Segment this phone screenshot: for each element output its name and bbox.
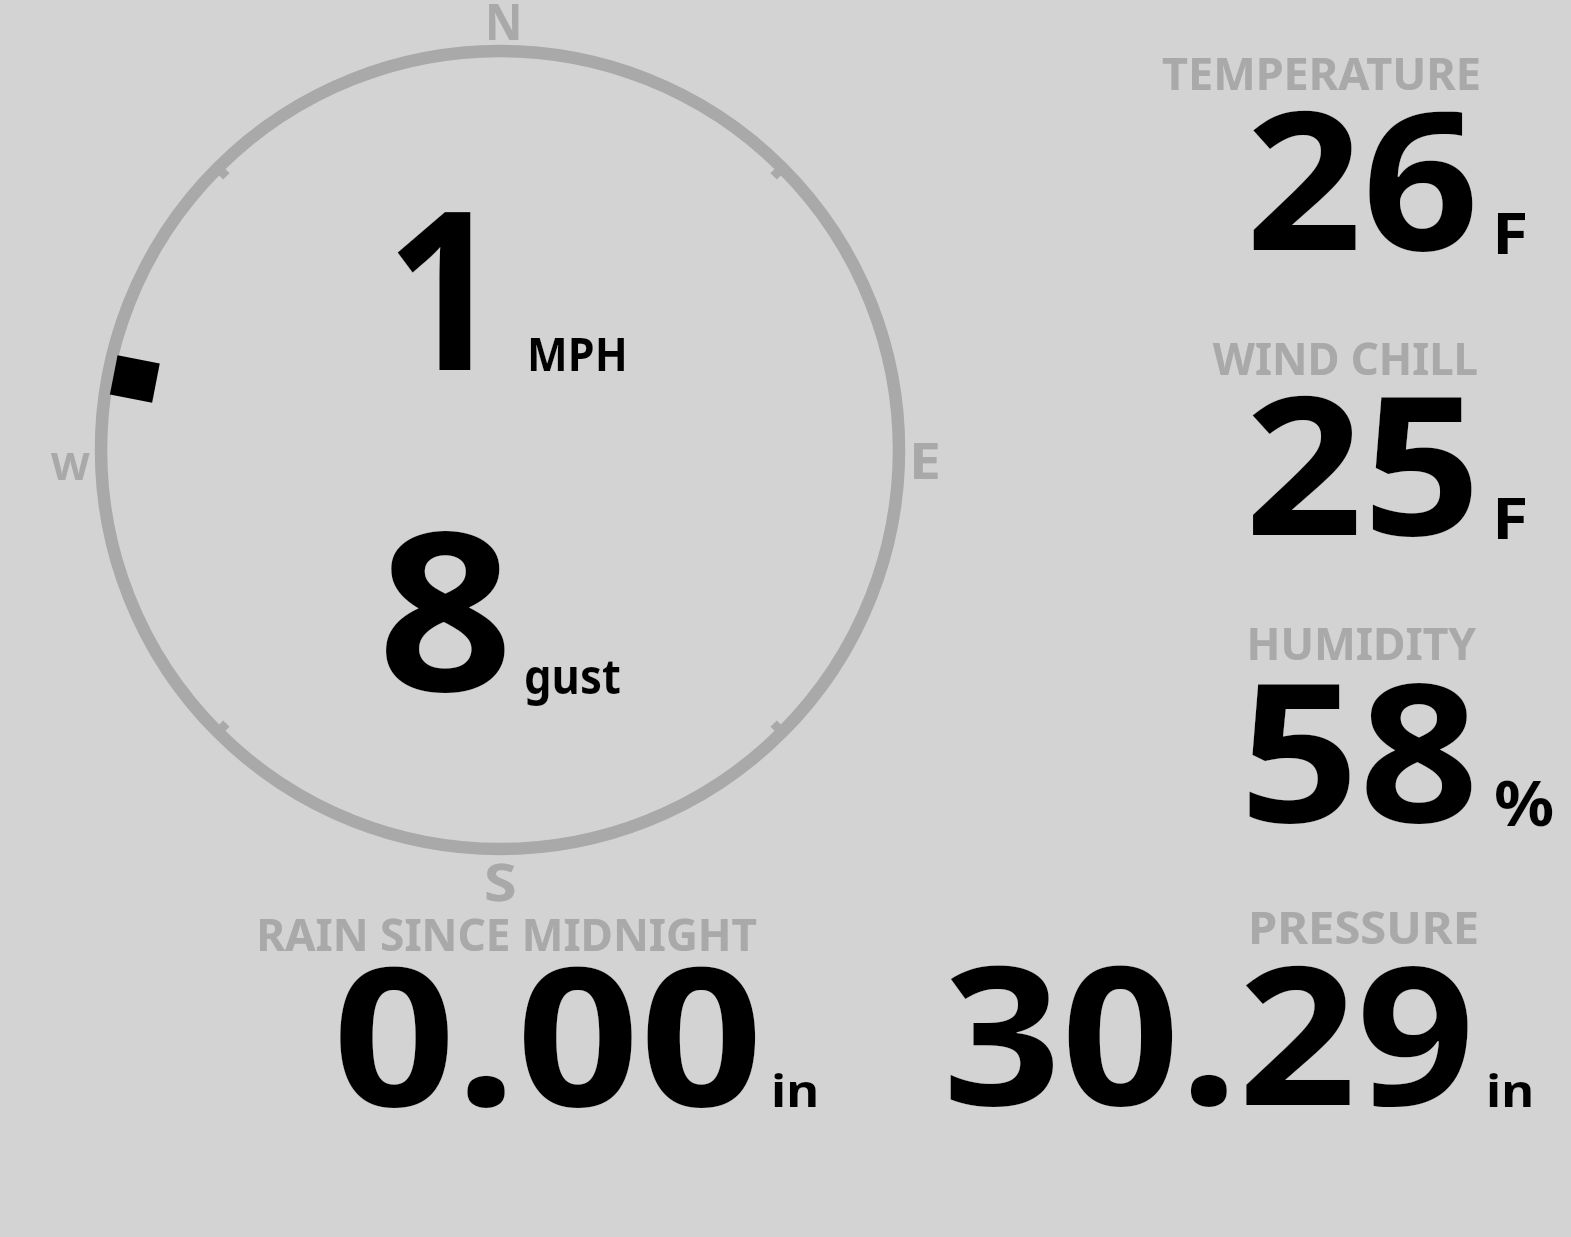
button[interactable]: TEMPERATURE xyxy=(1140,40,1571,270)
button[interactable]: 8 xyxy=(330,500,660,720)
staticText: MPH xyxy=(527,322,628,385)
staticText: S xyxy=(484,845,517,916)
staticText: 26 xyxy=(1245,45,1479,307)
staticText: 0.00 xyxy=(332,901,763,1163)
staticText: 8 xyxy=(377,455,513,756)
button[interactable]: 1 xyxy=(330,170,660,400)
staticText: 58 xyxy=(1239,617,1479,879)
button[interactable]: RAIN SINCE MIDNIGHT xyxy=(240,895,840,1130)
staticText: E xyxy=(909,426,941,494)
staticText: in xyxy=(771,1059,820,1120)
staticText: W xyxy=(51,439,90,491)
staticText: PRESSURE xyxy=(1248,896,1479,957)
staticText: RAIN SINCE MIDNIGHT xyxy=(255,903,757,964)
staticText: HUMIDITY xyxy=(1246,612,1476,673)
staticText: % xyxy=(1494,759,1554,845)
button[interactable]: PRESSURE xyxy=(930,895,1571,1130)
staticText: TEMPERATURE xyxy=(1162,42,1481,103)
staticText: in xyxy=(1486,1059,1535,1120)
staticText: F xyxy=(1492,478,1529,556)
staticText: WIND CHILL xyxy=(1212,327,1478,388)
staticText: 25 xyxy=(1244,330,1481,592)
staticText: 1 xyxy=(385,134,503,435)
button[interactable]: HUMIDITY xyxy=(1140,610,1571,840)
staticText: 30.29 xyxy=(942,900,1475,1162)
button[interactable]: Wind direction compass xyxy=(88,38,912,862)
staticText: N xyxy=(485,0,523,55)
button[interactable]: WIND CHILL xyxy=(1140,325,1571,555)
staticText: gust xyxy=(524,643,621,708)
staticText: F xyxy=(1492,193,1529,271)
